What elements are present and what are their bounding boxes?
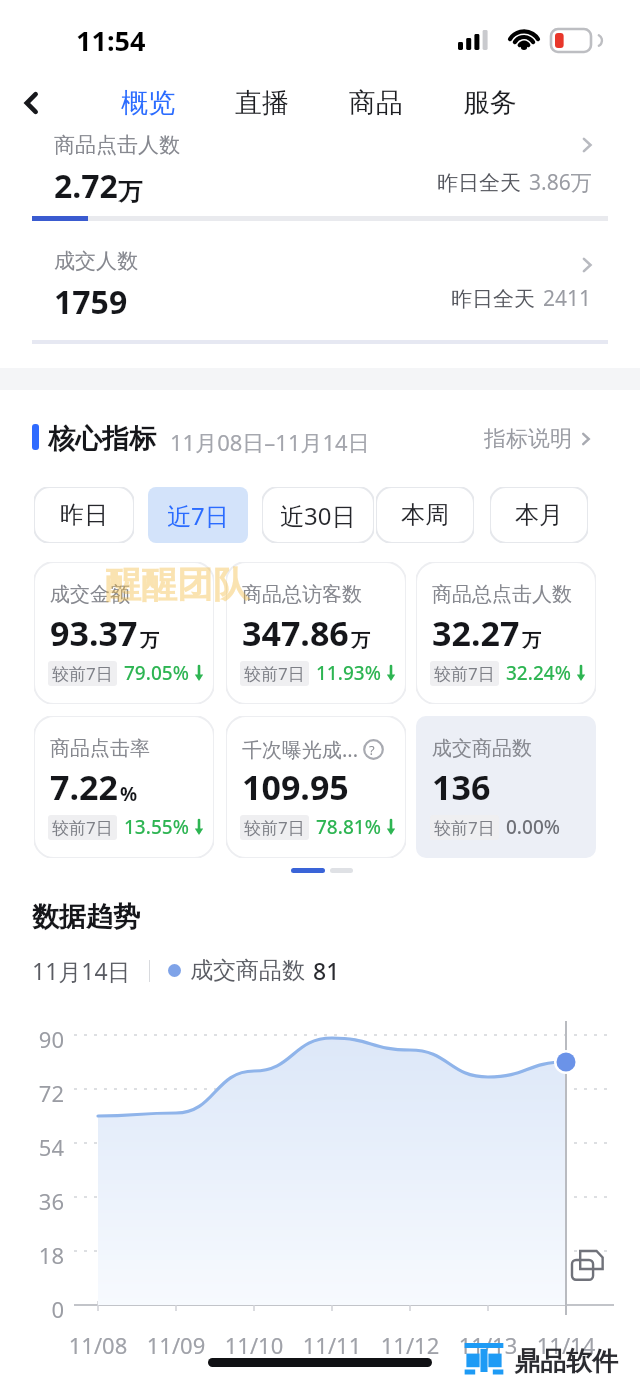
staticText: 11/14 (531, 1330, 601, 1360)
staticText: 近7日 (167, 499, 229, 532)
staticText: 本周 (401, 500, 449, 530)
staticText: 54 (32, 1132, 64, 1162)
staticText: 成交人数 (54, 248, 138, 274)
staticText: 昨日 (60, 500, 108, 530)
button[interactable]: 昨日 (34, 487, 134, 543)
staticText: 11/10 (219, 1330, 289, 1360)
staticText: 109.95 (242, 764, 349, 810)
button[interactable]: 商品点击人数 (32, 126, 608, 216)
staticText: 万 (351, 629, 370, 653)
staticText: 较前7日 (52, 816, 113, 839)
staticText: % (120, 781, 138, 807)
staticText: 0 (32, 1294, 64, 1324)
button[interactable]: 商品 (346, 76, 406, 130)
staticText: 347.86 (242, 610, 349, 656)
staticText: 万 (118, 177, 142, 207)
staticText: 较前7日 (244, 662, 305, 685)
staticText: 2.72 (54, 164, 118, 208)
staticText: 78.81% (316, 814, 381, 840)
staticText: 较前7日 (52, 662, 113, 685)
staticText: 直播 (235, 86, 289, 120)
staticText: 指标说明 (484, 425, 572, 453)
button[interactable]: 千次曝光成... (226, 716, 406, 858)
button[interactable]: 近7日 (148, 487, 248, 543)
button[interactable]: 商品总访客数 (226, 562, 406, 704)
button[interactable]: 成交商品数 (416, 716, 596, 858)
staticText: 服务 (463, 86, 517, 120)
staticText: 136 (432, 764, 491, 810)
staticText: 11/13 (453, 1330, 523, 1360)
staticText: 32.27 (432, 610, 520, 656)
staticText: 36 (32, 1186, 64, 1216)
staticText: 79.05% (124, 660, 189, 686)
staticText: 1759 (54, 280, 128, 324)
staticText: 11/08 (63, 1330, 133, 1360)
staticText: 成交商品数 (432, 736, 532, 761)
button[interactable]: 商品总点击人数 (416, 562, 596, 704)
button[interactable]: 近30日 (262, 487, 374, 543)
staticText: 11/12 (375, 1330, 445, 1360)
staticText: 72 (32, 1078, 64, 1108)
button[interactable]: 直播 (232, 76, 292, 130)
staticText: ? (369, 741, 375, 759)
button[interactable]: 概览 (118, 76, 178, 130)
staticText: 醒醒团队 (105, 562, 249, 607)
staticText: 0.00% (506, 814, 560, 840)
staticText: 90 (32, 1024, 64, 1054)
staticText: 13.55% (124, 814, 189, 840)
staticText: 近30日 (280, 499, 356, 532)
staticText: 81 (313, 955, 340, 986)
staticText: 11:54 (76, 22, 146, 59)
staticText: 11月08日–11月14日 (170, 427, 370, 457)
staticText: 93.37 (50, 610, 138, 656)
staticText: 千次曝光成... (242, 736, 359, 763)
staticText: 商品点击率 (50, 736, 150, 761)
staticText: 鼎品软件 (514, 1345, 618, 1378)
staticText: 核心指标 (48, 422, 156, 456)
staticText: 昨日全天 (437, 170, 521, 196)
button[interactable]: 服务 (460, 76, 520, 130)
staticText: 11月14日 (32, 955, 131, 986)
staticText: 商品总点击人数 (432, 582, 572, 607)
staticText: 商品总访客数 (242, 582, 362, 607)
staticText: 商品 (349, 86, 403, 120)
staticText: 较前7日 (434, 816, 495, 839)
staticText: 7.22 (50, 764, 118, 810)
button[interactable]: Back (8, 78, 56, 128)
staticText: 11.93% (316, 660, 381, 686)
staticText: 较前7日 (244, 816, 305, 839)
staticText: 32.24% (506, 660, 571, 686)
staticText: 数据趋势 (32, 900, 140, 934)
staticText: 万 (140, 629, 159, 653)
staticText: 本月 (515, 500, 563, 530)
button[interactable]: 成交金额 (34, 562, 214, 704)
button[interactable]: 本月 (490, 487, 588, 543)
staticText: 较前7日 (434, 662, 495, 685)
other: Copy (570, 1250, 604, 1284)
button[interactable]: 指标说明 (484, 424, 596, 454)
staticText: 商品点击人数 (54, 132, 180, 158)
button[interactable]: 商品点击率 (34, 716, 214, 858)
staticText: 2411 (543, 284, 592, 313)
staticText: 昨日全天 (451, 286, 535, 312)
button[interactable]: 本周 (376, 487, 474, 543)
staticText: 概览 (121, 86, 175, 120)
staticText: 成交商品数 (190, 956, 305, 985)
staticText: 11/09 (141, 1330, 211, 1360)
staticText: 3.86万 (529, 168, 592, 197)
staticText: 11/11 (297, 1330, 367, 1360)
button[interactable]: 成交人数 (32, 236, 608, 340)
staticText: 万 (522, 629, 541, 653)
staticText: 成交金额 (50, 582, 130, 607)
staticText: 18 (32, 1240, 64, 1270)
